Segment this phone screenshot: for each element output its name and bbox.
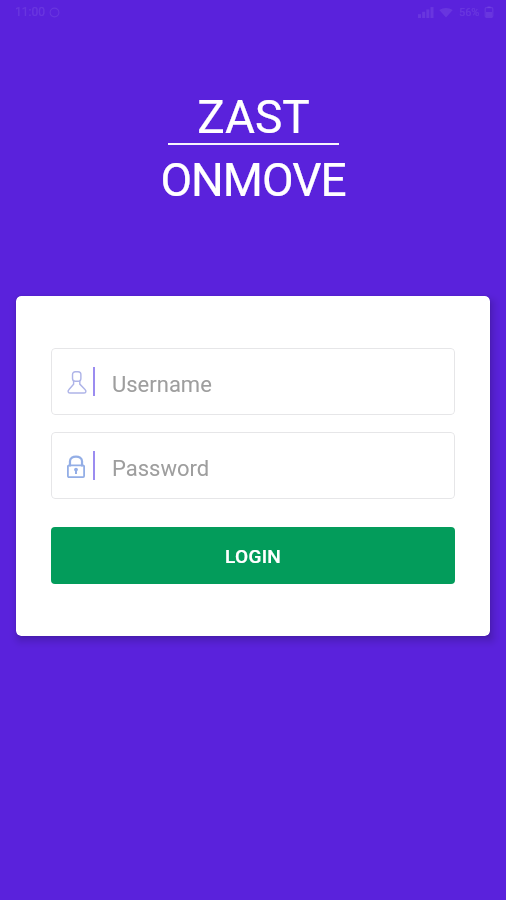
button[interactable]: LOGIN: [51, 527, 455, 584]
staticText: ZAST: [197, 90, 310, 144]
staticText: Username: [112, 372, 212, 398]
staticText: LOGIN: [225, 545, 282, 567]
button[interactable]: Password: [51, 432, 455, 499]
staticText: 11:00: [15, 5, 45, 19]
button[interactable]: Username: [51, 348, 455, 415]
staticText: ONMOVE: [160, 153, 346, 207]
staticText: 56%: [459, 6, 480, 19]
staticText: Password: [112, 456, 210, 482]
